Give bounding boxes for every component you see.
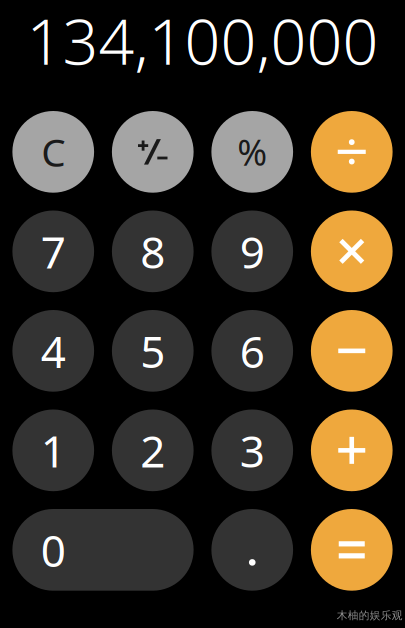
button[interactable]: % xyxy=(211,111,293,193)
staticText: 4 xyxy=(41,322,66,380)
button[interactable]: 5 xyxy=(112,310,194,392)
button[interactable]: Add xyxy=(311,409,393,491)
button[interactable]: 8 xyxy=(112,210,194,292)
button[interactable]: Multiply xyxy=(311,210,393,292)
staticText: 2 xyxy=(140,421,165,479)
button[interactable]: 2 xyxy=(112,409,194,491)
button[interactable]: Subtract xyxy=(311,310,393,392)
staticText: 134,100,000 xyxy=(26,0,378,82)
button[interactable]: C xyxy=(12,111,94,193)
button[interactable]: 0 xyxy=(12,509,194,591)
staticText: 3 xyxy=(240,421,265,479)
button[interactable]: 9 xyxy=(211,210,293,292)
staticText: 5 xyxy=(140,322,165,380)
button[interactable]: Decimal point xyxy=(211,509,293,591)
staticText: % xyxy=(237,128,267,176)
staticText: 8 xyxy=(140,222,165,280)
staticText: 6 xyxy=(240,322,265,380)
button[interactable]: 6 xyxy=(211,310,293,392)
button[interactable]: Equals xyxy=(311,509,393,591)
button[interactable]: Toggle sign xyxy=(112,111,194,193)
button[interactable]: 4 xyxy=(12,310,94,392)
button[interactable]: 1 xyxy=(12,409,94,491)
staticText: C xyxy=(41,126,65,177)
button[interactable]: 7 xyxy=(12,210,94,292)
button[interactable]: 3 xyxy=(211,409,293,491)
staticText: 9 xyxy=(240,222,265,280)
staticText: 7 xyxy=(41,222,66,280)
staticText: 1 xyxy=(41,421,66,479)
staticText: 木柚的娱乐观 xyxy=(337,609,403,622)
button[interactable]: Divide xyxy=(311,111,393,193)
staticText: 0 xyxy=(41,521,66,579)
